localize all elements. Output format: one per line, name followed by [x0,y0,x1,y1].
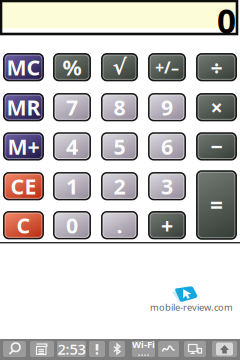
button[interactable]: CE [4,173,43,200]
staticText: √ [112,55,126,79]
staticText: 2 [113,172,125,200]
button[interactable]: 0 [54,212,90,239]
staticText: MR [6,93,40,121]
staticText: 0 [66,211,78,239]
staticText: 3 [161,172,173,200]
button[interactable]: % [54,54,90,81]
button[interactable]: 2:53 [57,341,86,357]
button[interactable]: . [102,212,137,239]
staticText: . [116,211,122,239]
button[interactable]: Notifications [89,341,105,357]
button[interactable]: 2 [102,173,137,200]
button[interactable]: 4 [54,133,90,160]
button[interactable]: 7 [54,94,90,121]
staticText: × [210,93,222,121]
staticText: 0 [217,0,236,43]
staticText: + [161,211,173,239]
staticText: 2:53 [57,339,85,359]
button[interactable]: Divide [197,54,236,81]
button[interactable]: Notes [30,341,54,357]
staticText: 1 [66,172,78,200]
button[interactable]: C [4,212,43,239]
button[interactable]: M+ [4,133,43,160]
button[interactable]: Search [3,341,26,357]
button[interactable]: Input panel [212,341,237,357]
staticText: 6 [161,132,173,160]
button[interactable]: 5 [102,133,137,160]
staticText: ÷ [210,53,222,81]
staticText: CE [10,172,36,200]
button[interactable]: Bluetooth [109,341,125,357]
staticText: 5 [113,132,125,160]
staticText: C [16,211,30,239]
staticText: +/– [155,57,179,78]
button[interactable]: MC [4,54,43,81]
staticText: ∙∙∙∙ [137,351,149,360]
button[interactable]: 6 [149,133,185,160]
button[interactable]: Plus minus [149,54,185,81]
button[interactable]: Minus [197,133,236,160]
button[interactable]: Equals [197,171,236,239]
staticText: = [210,190,223,220]
button[interactable]: 8 [102,94,137,121]
button[interactable]: Square root [102,54,137,81]
button[interactable]: Wi-Fi [132,341,155,357]
button[interactable]: 3 [149,173,185,200]
staticText: Wi-Fi [132,338,155,351]
button[interactable]: Signal [158,341,179,357]
button[interactable]: Display [184,341,206,357]
staticText: 9 [161,93,173,121]
staticText: − [210,132,222,160]
button[interactable]: + [149,212,185,239]
staticText: % [62,53,81,81]
button[interactable]: 9 [149,94,185,121]
staticText: mobile-review.com [150,301,233,313]
button[interactable]: 1 [54,173,90,200]
staticText: 4 [66,132,78,160]
staticText: M+ [7,132,39,160]
button[interactable]: MR [4,94,43,121]
staticText: MC [6,53,40,81]
staticText: 7 [66,93,78,121]
staticText: 8 [113,93,125,121]
button[interactable]: Multiply [197,94,236,121]
